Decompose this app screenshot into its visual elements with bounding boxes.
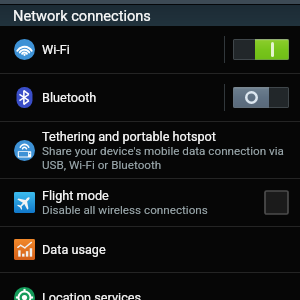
- button[interactable]: Flight mode: [0, 179, 300, 226]
- staticText: Flight mode: [42, 188, 109, 203]
- button[interactable]: Wi-Fi: [0, 26, 300, 73]
- staticText: Disable all wireless connections: [42, 203, 208, 217]
- button[interactable]: Location services: [0, 273, 300, 300]
- staticText: Network connections: [13, 7, 151, 24]
- button[interactable]: Bluetooth switch, off: [233, 87, 289, 108]
- staticText: Share your device's mobile data connecti…: [42, 144, 298, 171]
- button[interactable]: Tethering and portable hotspot: [0, 122, 300, 178]
- staticText: Data usage: [42, 242, 106, 257]
- button[interactable]: Wi-Fi switch, on: [233, 39, 289, 60]
- button[interactable]: Network connections: [0, 5, 300, 26]
- staticText: Wi-Fi: [42, 42, 70, 57]
- staticText: Location services: [42, 290, 142, 300]
- staticText: Bluetooth: [42, 90, 97, 105]
- staticText: Tethering and portable hotspot: [42, 129, 216, 144]
- button[interactable]: Data usage: [0, 227, 300, 272]
- button[interactable]: Flight mode checkbox, unchecked: [265, 191, 288, 214]
- button[interactable]: Bluetooth: [0, 74, 300, 121]
